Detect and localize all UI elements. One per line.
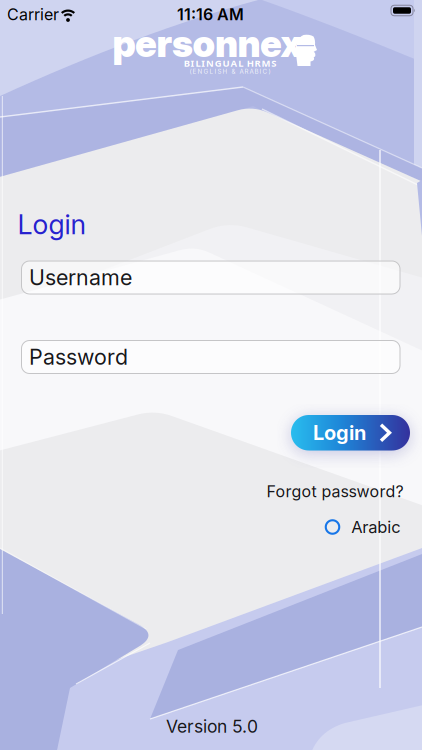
button[interactable]: Password bbox=[21, 340, 400, 373]
staticText: (ENGLISH & ARABIC) bbox=[189, 68, 270, 75]
staticText: Login bbox=[313, 421, 366, 445]
staticText: Carrier bbox=[7, 5, 59, 24]
button[interactable]: Username bbox=[21, 261, 400, 294]
staticText: 11:16 AM bbox=[177, 5, 244, 24]
button[interactable]: Arabic bbox=[326, 517, 400, 537]
button[interactable]: Login bbox=[291, 415, 410, 450]
staticText: personnex bbox=[112, 21, 301, 66]
staticText: Version 5.0 bbox=[166, 716, 258, 737]
staticText: Login bbox=[17, 208, 86, 241]
staticText: Forgot password? bbox=[266, 482, 403, 501]
button[interactable]: Forgot password? bbox=[266, 482, 403, 501]
staticText: Arabic bbox=[351, 517, 400, 537]
staticText: BILINGUAL HRMS bbox=[184, 56, 276, 69]
staticText: Username bbox=[29, 264, 132, 290]
staticText: Password bbox=[29, 344, 128, 370]
